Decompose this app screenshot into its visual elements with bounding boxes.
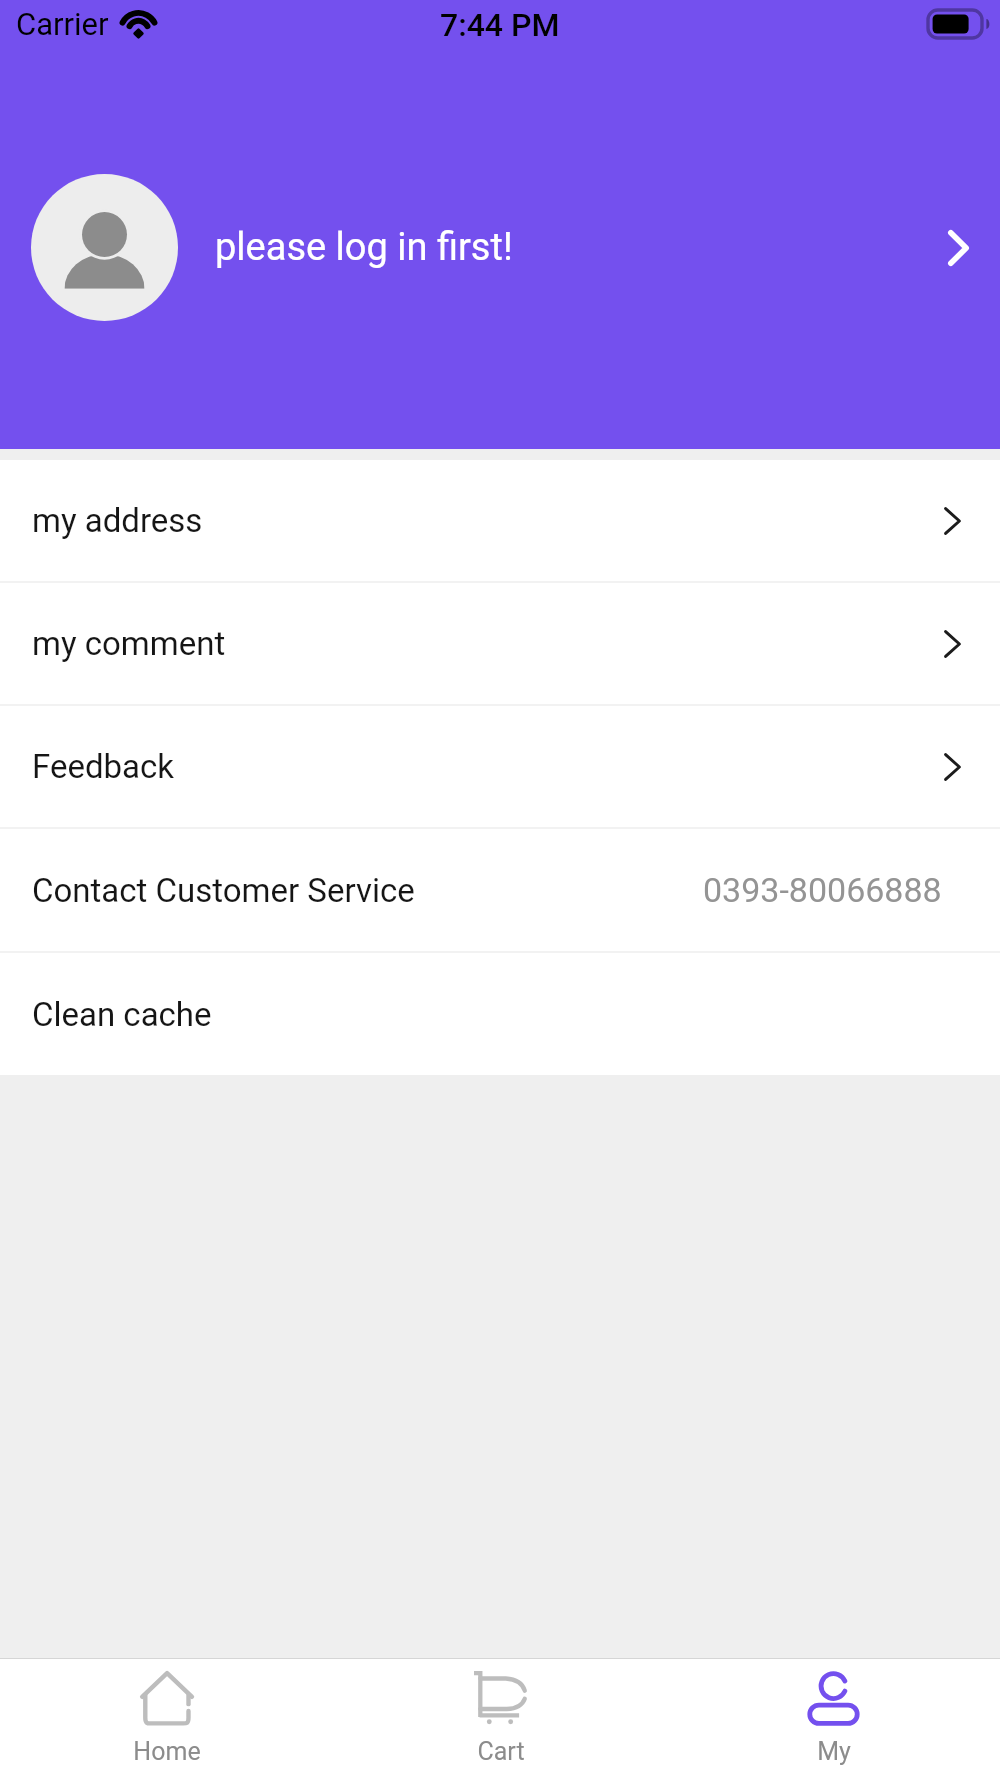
staticText: Carrier bbox=[16, 6, 109, 42]
staticText: Feedback bbox=[32, 747, 174, 786]
staticText: Home bbox=[133, 1737, 201, 1766]
button[interactable]: Home bbox=[0, 1659, 334, 1778]
button[interactable]: Feedback bbox=[0, 706, 1000, 827]
staticText: my address bbox=[32, 501, 203, 540]
staticText: Cart bbox=[477, 1737, 525, 1766]
button[interactable]: Cart bbox=[334, 1659, 667, 1778]
other: Log in bbox=[937, 227, 979, 269]
staticText: My bbox=[817, 1737, 851, 1766]
staticText: Clean cache bbox=[32, 995, 212, 1034]
button[interactable]: My bbox=[667, 1659, 1000, 1778]
staticText: 0393-80066888 bbox=[703, 870, 942, 910]
button[interactable]: Contact Customer Service bbox=[0, 829, 1000, 951]
button[interactable]: Clean cache bbox=[0, 953, 1000, 1075]
staticText: Contact Customer Service bbox=[32, 871, 415, 910]
staticText: my comment bbox=[32, 624, 226, 663]
staticText: 7:44 PM bbox=[440, 6, 560, 44]
staticText: please log in first! bbox=[215, 225, 513, 270]
button[interactable]: please log in first! bbox=[0, 147, 1000, 348]
button[interactable]: my comment bbox=[0, 583, 1000, 704]
button[interactable]: my address bbox=[0, 460, 1000, 581]
